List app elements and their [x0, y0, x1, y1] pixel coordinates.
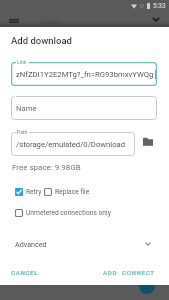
staticText: CANCEL: [11, 269, 39, 276]
staticText: Free space: 9.98GB: [12, 163, 81, 172]
staticText: 5:33: [153, 2, 166, 10]
button[interactable]: Add download: [139, 278, 155, 294]
button[interactable]: Name: [11, 96, 157, 120]
staticText: Retry: [26, 188, 42, 196]
button[interactable]: ADD: [99, 265, 122, 280]
button[interactable]: CANCEL: [7, 265, 43, 280]
staticText: ADD: [103, 269, 118, 276]
staticText: /storage/emulated/0/Download: [16, 140, 126, 149]
staticText: Advanced: [15, 240, 47, 248]
button[interactable]: CONNECT: [118, 265, 159, 280]
staticText: Add download: [11, 35, 72, 46]
button[interactable]: Retry: [15, 186, 42, 198]
staticText: Search...: [40, 18, 66, 26]
button[interactable]: Choose folder: [141, 135, 154, 148]
staticText: CONNECT: [122, 269, 155, 276]
button[interactable]: /storage/emulated/0/Download: [11, 132, 135, 156]
button[interactable]: Replace file: [44, 186, 90, 198]
button[interactable]: Unmetered connections only: [15, 207, 111, 219]
staticText: Link: [17, 59, 27, 65]
staticText: zNfZDI1Y2E2MTg?_fn=RG93bmxvYWQg: [16, 70, 154, 79]
staticText: Name: [16, 104, 37, 113]
staticText: Unmetered connections only: [26, 209, 111, 217]
button[interactable]: Advanced: [0, 234, 169, 254]
button[interactable]: zNfZDI1Y2E2MTg?_fn=RG93bmxvYWQg: [11, 62, 157, 86]
staticText: Path: [17, 129, 28, 135]
staticText: Replace file: [55, 188, 90, 196]
